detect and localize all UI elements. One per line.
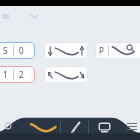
button[interactable]: Alignment curve xyxy=(30,120,56,134)
staticText: 2 xyxy=(19,69,24,80)
button[interactable]: Curve tangent offset xyxy=(44,66,88,83)
button[interactable]: Settings xyxy=(2,120,13,131)
button[interactable]: Menu xyxy=(126,120,138,132)
button[interactable]: P xyxy=(95,42,140,59)
button[interactable]: Dropdown xyxy=(29,11,39,21)
button[interactable]: Draw xyxy=(69,120,83,134)
staticText: P xyxy=(99,45,104,56)
button[interactable]: Curve vertical offset xyxy=(44,42,88,59)
staticText: 0 xyxy=(19,45,24,56)
other: Inspect curve xyxy=(112,44,134,57)
button[interactable]: 1 xyxy=(0,66,35,83)
button[interactable]: Display xyxy=(97,120,112,134)
staticText: 1 xyxy=(3,69,8,80)
button[interactable]: S xyxy=(0,42,35,59)
staticText: S xyxy=(3,45,8,56)
